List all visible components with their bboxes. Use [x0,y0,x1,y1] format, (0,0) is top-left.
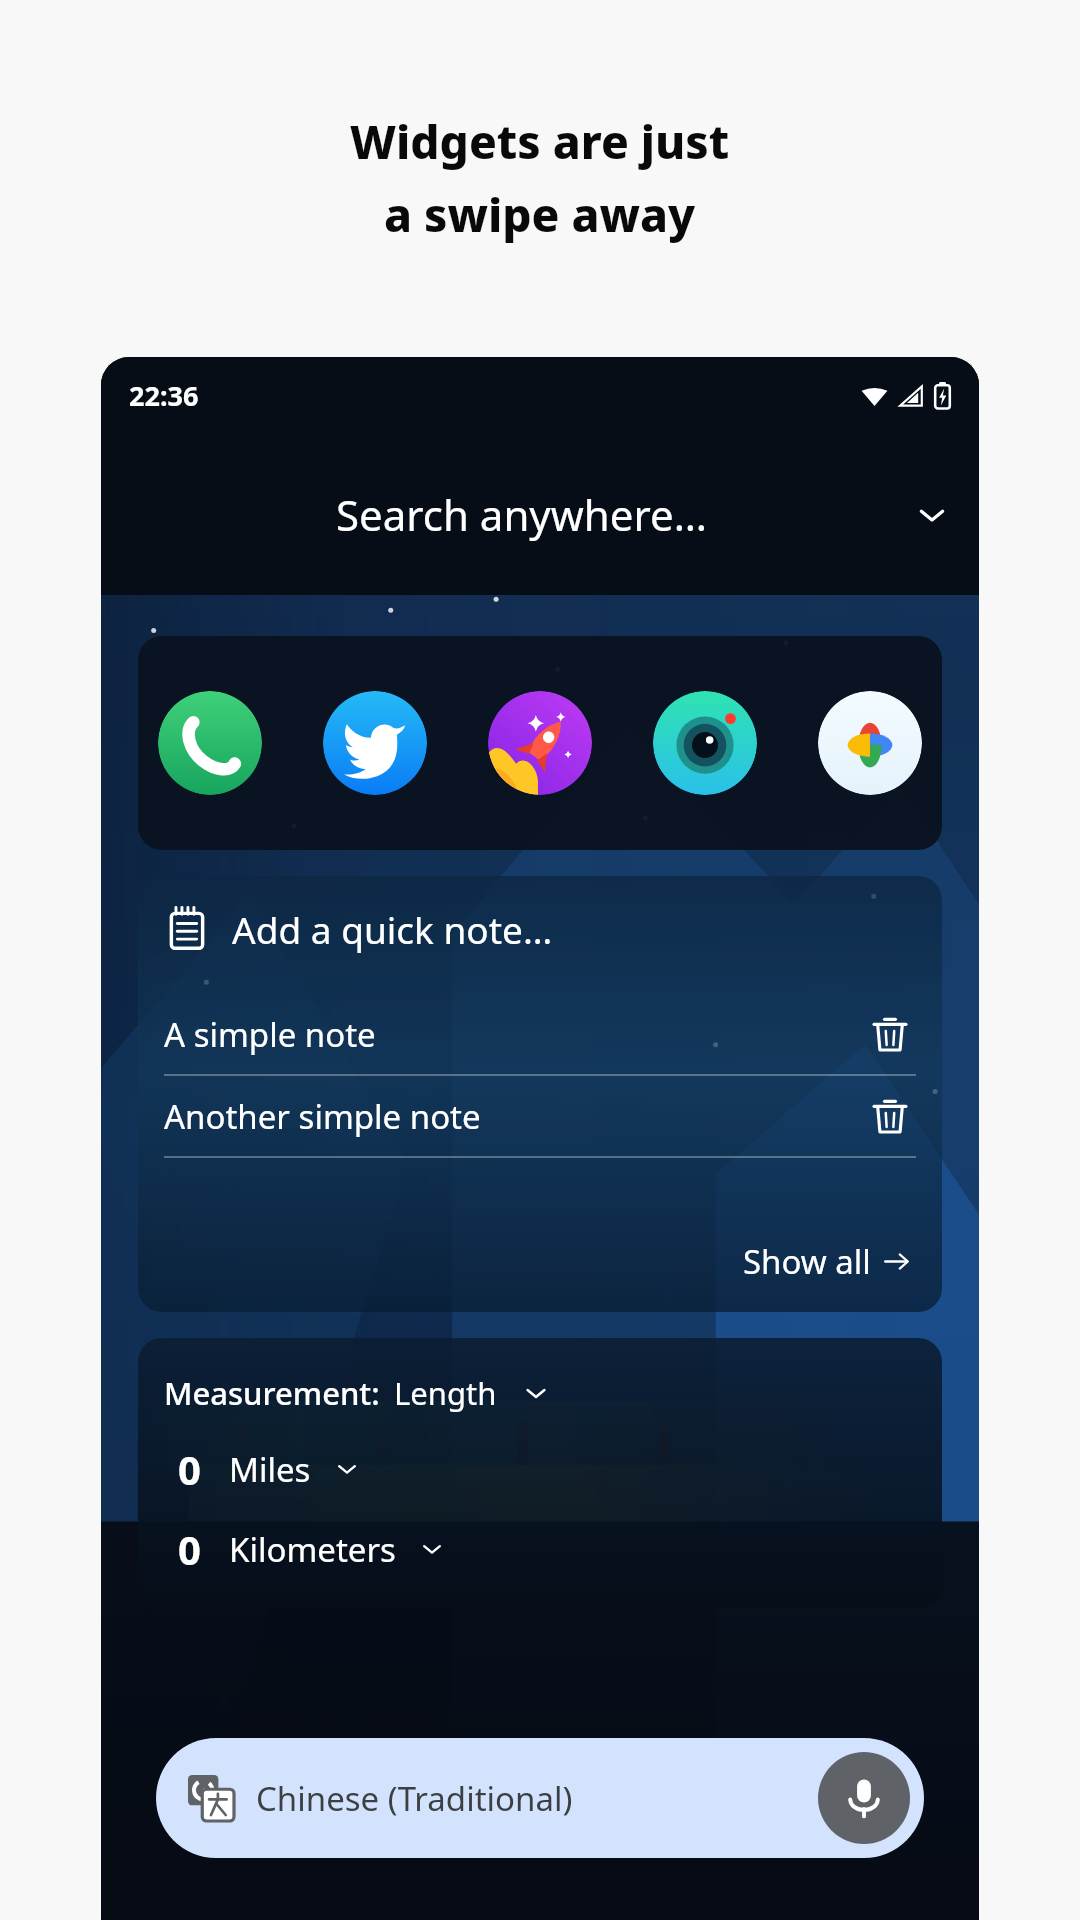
button[interactable]: Measurement: [164,1372,551,1414]
staticText: Widgets are just [350,110,730,173]
button[interactable]: Chinese (Traditional) [156,1738,924,1858]
staticText: a swipe away [384,183,696,246]
staticText: Length [394,1372,497,1414]
staticText: Show all [743,1239,871,1284]
staticText: Miles [229,1447,311,1492]
staticText: Add a quick note… [232,904,553,954]
button[interactable]: A simple note [164,994,916,1076]
button[interactable]: Twitter [323,691,427,795]
staticText: Chinese (Traditional) [256,1776,573,1821]
button[interactable]: Delete note [864,1090,916,1142]
button[interactable]: Search anywhere… [101,486,979,543]
button[interactable]: 0 [164,1442,361,1496]
button[interactable]: 0 [164,1522,446,1576]
staticText: 0 [178,1522,201,1576]
staticText: Measurement: [164,1372,380,1414]
button[interactable]: Voice input [818,1752,910,1844]
button[interactable]: Phone [158,691,262,795]
button[interactable]: Another simple note [164,1076,916,1158]
other: Expand search [913,496,951,534]
staticText: Search anywhere… [336,486,707,543]
button[interactable]: Delete note [864,1008,916,1060]
staticText: Another simple note [164,1094,481,1139]
button[interactable]: Show all [737,1233,916,1290]
button[interactable]: Google Photos [818,691,922,795]
button[interactable]: Camera [653,691,757,795]
button[interactable]: Space [488,691,592,795]
staticText: Kilometers [229,1527,396,1572]
staticText: 0 [178,1442,201,1496]
staticText: 22:36 [129,377,199,414]
button[interactable]: Phone [138,636,942,850]
staticText: A simple note [164,1012,376,1057]
button[interactable]: Add a quick note… [164,904,916,954]
